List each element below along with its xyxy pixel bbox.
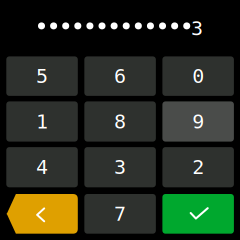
button[interactable]: Delete: [6, 194, 78, 234]
staticText: 0: [192, 65, 204, 87]
staticText: 4: [36, 156, 48, 179]
staticText: 9: [192, 110, 204, 133]
staticText: 3: [114, 156, 126, 179]
staticText: 7: [114, 202, 126, 225]
button[interactable]: Confirm: [162, 194, 234, 234]
button[interactable]: 3: [84, 147, 156, 187]
button[interactable]: 7: [84, 194, 156, 234]
button[interactable]: 4: [6, 147, 78, 187]
button[interactable]: 5: [6, 56, 78, 96]
button[interactable]: 8: [84, 101, 156, 142]
button[interactable]: 1: [6, 101, 78, 142]
staticText: 5: [36, 65, 48, 87]
staticText: 3: [191, 17, 203, 40]
staticText: 2: [192, 156, 204, 179]
button[interactable]: 2: [162, 147, 234, 187]
staticText: 1: [36, 110, 48, 133]
button[interactable]: 6: [84, 56, 156, 96]
button[interactable]: 0: [162, 56, 234, 96]
staticText: 8: [114, 110, 126, 133]
button[interactable]: 9: [162, 101, 234, 142]
staticText: 6: [114, 65, 126, 87]
